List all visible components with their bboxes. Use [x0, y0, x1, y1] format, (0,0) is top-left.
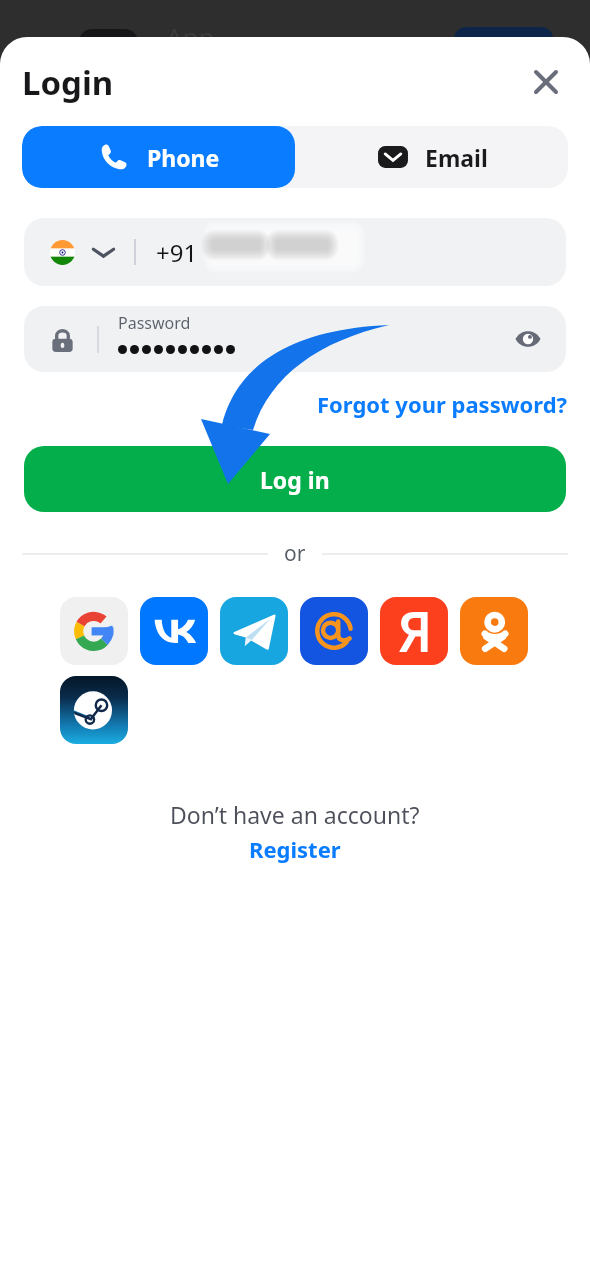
button[interactable]: Close — [524, 60, 568, 104]
button[interactable]: Password — [24, 306, 566, 372]
staticText: Email — [425, 142, 488, 173]
staticText: Log in — [260, 464, 330, 495]
staticText: +91 — [156, 236, 198, 269]
staticText: Password — [118, 312, 191, 334]
button[interactable]: Sign in with Google — [60, 597, 128, 665]
button[interactable]: Phone — [22, 126, 295, 188]
button[interactable]: Log in — [24, 446, 566, 512]
button[interactable]: Sign in with VK — [140, 597, 208, 665]
button[interactable]: Forgot your password? — [317, 389, 568, 419]
button[interactable]: Show password — [504, 315, 552, 363]
button[interactable]: Sign in with Telegram — [220, 597, 288, 665]
button[interactable]: Sign in with Steam — [60, 676, 128, 744]
staticText: or — [284, 539, 306, 568]
staticText: Don’t have an account? — [170, 799, 420, 830]
button[interactable]: Sign in with Odnoklassniki — [460, 597, 528, 665]
button[interactable]: +91 — [24, 218, 566, 286]
staticText: Phone — [147, 142, 220, 173]
button[interactable]: Register — [249, 834, 341, 864]
button[interactable]: Sign in with Mail.ru — [300, 597, 368, 665]
button[interactable]: Sign in with Yandex — [380, 597, 448, 665]
staticText: Login — [22, 60, 114, 105]
button[interactable]: Email — [295, 126, 568, 188]
staticText: App — [166, 19, 215, 54]
